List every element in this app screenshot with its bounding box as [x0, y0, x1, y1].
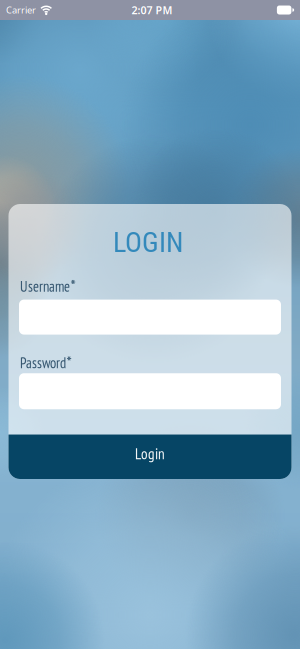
staticText: LOGIN	[113, 226, 183, 259]
button[interactable]: Username	[19, 300, 281, 335]
staticText: 2:07 PM	[131, 3, 172, 17]
staticText: Carrier	[6, 4, 36, 16]
staticText: *	[70, 274, 75, 297]
button[interactable]: Password	[19, 373, 281, 409]
staticText: Password	[20, 354, 66, 372]
button[interactable]: Login	[8, 434, 291, 479]
staticText: Username	[20, 277, 70, 296]
staticText: Login	[135, 444, 165, 463]
staticText: *	[66, 351, 71, 374]
